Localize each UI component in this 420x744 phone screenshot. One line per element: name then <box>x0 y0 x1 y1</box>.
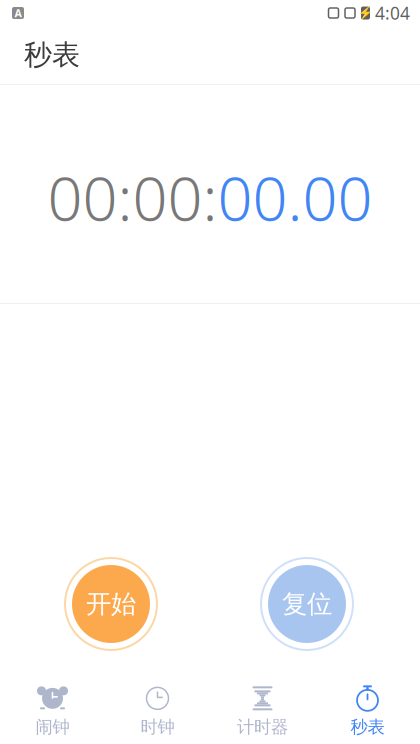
button[interactable]: 复位 <box>259 556 355 652</box>
staticText: A <box>14 6 21 20</box>
staticText: 秒表 <box>24 38 80 72</box>
staticText: 时钟 <box>140 716 174 738</box>
staticText: 00:00: <box>47 156 217 238</box>
staticText: 闹钟 <box>35 716 69 738</box>
button[interactable]: 计时器 <box>210 678 315 742</box>
staticText: ⚡ <box>358 6 373 20</box>
staticText: 开始 <box>86 588 136 619</box>
staticText: 4:04 <box>375 1 410 24</box>
staticText: 复位 <box>282 588 332 619</box>
button[interactable]: 闹钟 <box>0 678 105 742</box>
button[interactable]: 时钟 <box>105 678 210 742</box>
button[interactable]: 秒表 <box>315 678 420 742</box>
button[interactable]: 开始 <box>63 556 159 652</box>
staticText: 计时器 <box>237 716 288 738</box>
staticText: 秒表 <box>350 716 384 738</box>
staticText: 00.00 <box>217 156 372 238</box>
